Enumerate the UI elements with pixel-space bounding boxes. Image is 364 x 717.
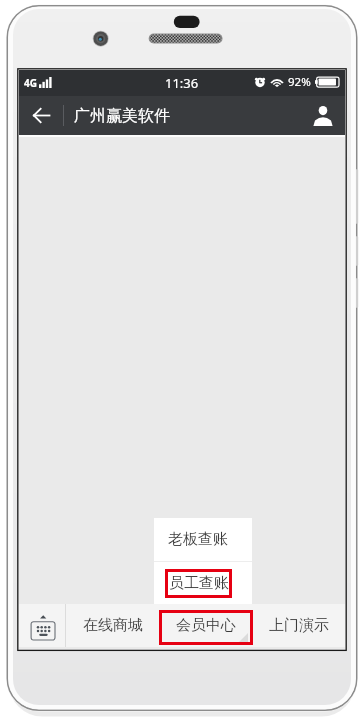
staticText: 4G xyxy=(24,76,37,90)
staticText: 广州赢美软件 xyxy=(74,106,170,126)
button[interactable]: 老板查账 xyxy=(154,518,252,561)
button[interactable]: Account xyxy=(301,96,345,135)
button[interactable]: Back xyxy=(19,96,64,135)
button[interactable]: 会员中心 xyxy=(159,604,253,647)
button[interactable]: 上门演示 xyxy=(253,604,345,647)
staticText: 92% xyxy=(288,74,311,90)
staticText: 老板查账 xyxy=(168,530,228,549)
staticText: 会员中心 xyxy=(176,616,236,635)
staticText: 11:36 xyxy=(165,74,199,92)
staticText: 上门演示 xyxy=(269,616,329,635)
staticText: 员工查账 xyxy=(169,574,229,593)
button[interactable]: 员工查账 xyxy=(154,562,252,604)
button[interactable]: 在线商城 xyxy=(66,604,159,647)
button[interactable]: Keyboard xyxy=(19,604,65,647)
staticText: 在线商城 xyxy=(83,616,143,635)
